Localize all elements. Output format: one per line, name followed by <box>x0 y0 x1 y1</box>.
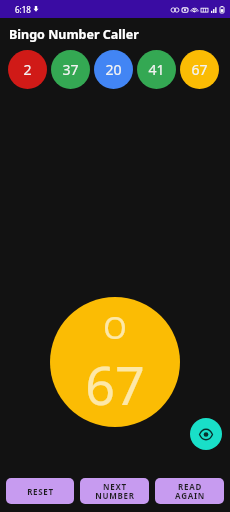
staticText: 6:18 <box>15 4 31 15</box>
staticText: RESET <box>27 486 54 497</box>
staticText: 2 <box>23 60 32 79</box>
staticText: O <box>103 307 127 348</box>
button[interactable]: 20 <box>94 50 133 89</box>
staticText: Bingo Number Caller <box>9 26 139 43</box>
button[interactable]: NEXT NUMBER <box>80 478 149 504</box>
staticText: READ AGAIN <box>175 481 205 502</box>
button[interactable]: Show called numbers <box>190 418 222 450</box>
button[interactable]: 37 <box>51 50 90 89</box>
button[interactable]: 41 <box>137 50 176 89</box>
staticText: 37 <box>62 60 79 79</box>
staticText: 41 <box>148 60 165 79</box>
button[interactable]: RESET <box>6 478 74 504</box>
staticText: 67 <box>85 349 145 420</box>
staticText: NEXT NUMBER <box>95 481 135 502</box>
staticText: 67 <box>191 60 208 79</box>
button[interactable]: READ AGAIN <box>155 478 224 504</box>
staticText: 20 <box>105 60 122 79</box>
button[interactable]: O <box>50 297 180 427</box>
button[interactable]: 2 <box>8 50 47 89</box>
button[interactable]: 67 <box>180 50 219 89</box>
